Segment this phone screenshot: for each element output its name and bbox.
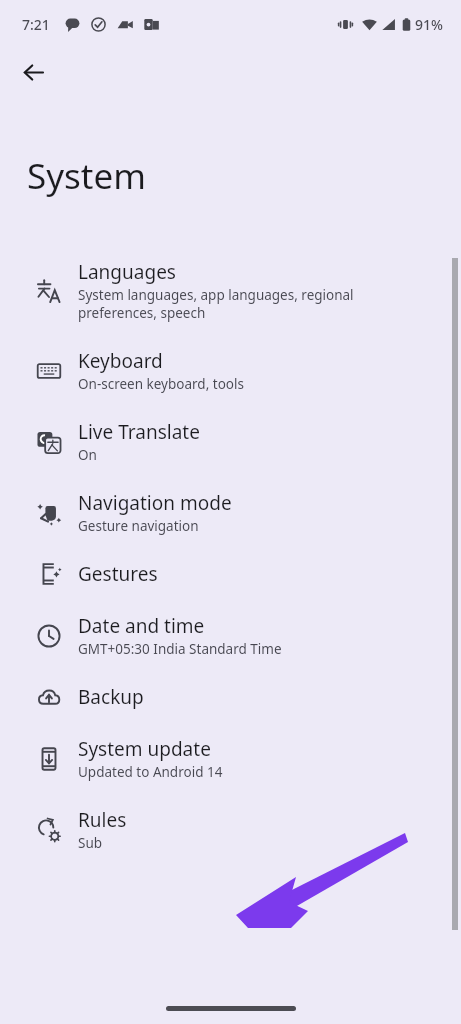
staticText: GMT+05:30 India Standard Time [78, 640, 282, 658]
staticText: Live Translate [78, 419, 200, 445]
staticText: Rules [78, 807, 127, 833]
button[interactable]: Backup [0, 671, 461, 723]
staticText: Gesture navigation [78, 517, 199, 535]
staticText: Backup [78, 684, 144, 710]
staticText: Sub [78, 834, 103, 852]
button[interactable]: Date and time [0, 600, 461, 671]
staticText: On-screen keyboard, tools [78, 375, 244, 393]
staticText: Gestures [78, 561, 158, 587]
button[interactable]: Live Translate [0, 406, 461, 477]
button[interactable]: System update [0, 723, 461, 794]
staticText: Navigation mode [78, 490, 232, 516]
staticText: 7:21 [22, 15, 50, 34]
staticText: 91% [415, 15, 443, 34]
button[interactable]: Back [9, 48, 57, 96]
button[interactable]: Gestures [0, 548, 461, 600]
button[interactable]: Languages [0, 246, 461, 335]
staticText: On [78, 446, 97, 464]
button[interactable]: Navigation mode [0, 477, 461, 548]
button[interactable]: Rules [0, 794, 461, 865]
button[interactable]: Keyboard [0, 335, 461, 406]
staticText: Keyboard [78, 348, 163, 374]
staticText: Updated to Android 14 [78, 763, 223, 781]
staticText: System update [78, 736, 211, 762]
staticText: System languages, app languages, regiona… [78, 286, 354, 322]
staticText: Languages [78, 259, 176, 285]
staticText: System [27, 152, 146, 200]
staticText: Date and time [78, 613, 205, 639]
